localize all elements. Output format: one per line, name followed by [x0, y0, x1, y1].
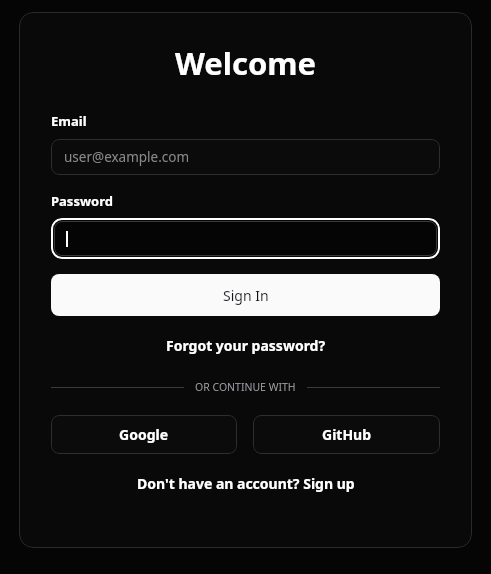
- staticText: Don't have an account? Sign up: [137, 474, 355, 493]
- staticText: Email: [51, 112, 87, 130]
- staticText: Forgot your password?: [166, 336, 326, 355]
- staticText: GitHub: [322, 425, 372, 444]
- button[interactable]: Continue with GitHub: [253, 415, 440, 454]
- button[interactable]: [54, 221, 437, 256]
- button[interactable]: Forgot your password?: [51, 336, 440, 355]
- button[interactable]: Don't have an account? Sign up: [51, 474, 440, 493]
- button[interactable]: Sign In: [51, 274, 440, 316]
- staticText: Google: [119, 425, 169, 444]
- staticText: OR CONTINUE WITH: [195, 380, 296, 394]
- staticText: Password: [51, 192, 113, 210]
- staticText: Sign In: [223, 286, 269, 305]
- staticText: Welcome: [51, 42, 440, 84]
- staticText: user@example.com: [64, 148, 190, 166]
- button[interactable]: Continue with Google: [51, 415, 237, 454]
- button[interactable]: user@example.com: [51, 139, 440, 175]
